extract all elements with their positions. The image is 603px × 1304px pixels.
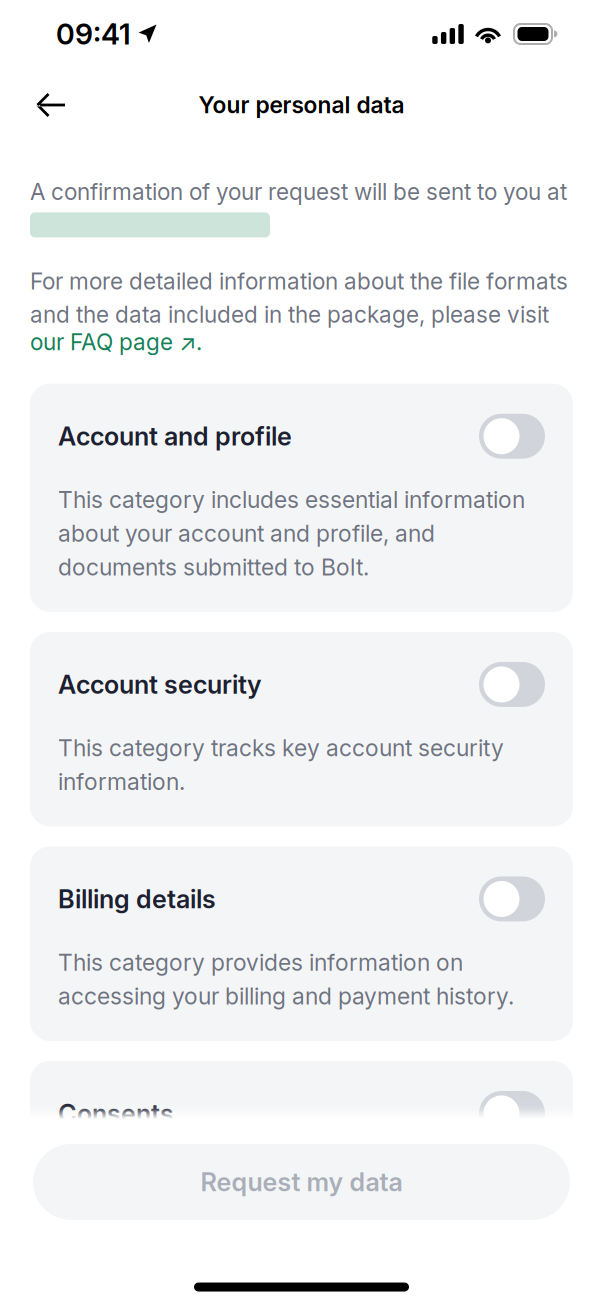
staticText: This category includes the consents you …: [58, 1163, 542, 1224]
button[interactable]: Account and profile: [30, 384, 573, 612]
staticText: This category includes essential informa…: [58, 486, 525, 581]
staticText: Account and profile: [58, 421, 292, 452]
staticText: our FAQ page ↗.: [30, 328, 202, 356]
staticText: Your personal data: [198, 91, 404, 119]
staticText: A confirmation of your request will be s…: [30, 178, 567, 205]
button[interactable]: Account security: [30, 632, 573, 826]
button[interactable]: Back: [29, 83, 73, 127]
staticText: This category tracks key account securit…: [58, 734, 504, 795]
staticText: Account security: [58, 669, 262, 700]
staticText: 09:41: [56, 17, 131, 51]
staticText: Request my data: [200, 1167, 402, 1197]
button[interactable]: Billing details: [30, 846, 573, 1041]
staticText: Billing details: [58, 884, 216, 914]
button[interactable]: Request my data: [33, 1144, 570, 1220]
button[interactable]: Consents: [30, 1061, 573, 1255]
staticText: Consents: [58, 1098, 174, 1129]
staticText: This category provides information on ac…: [58, 948, 514, 1010]
staticText: For more detailed information about the …: [30, 267, 568, 328]
